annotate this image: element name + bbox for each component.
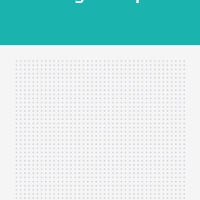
staticText: Page Setup (0, 0, 200, 4)
button[interactable]: Page Setup (0, 0, 200, 45)
button[interactable] (0, 46, 200, 200)
